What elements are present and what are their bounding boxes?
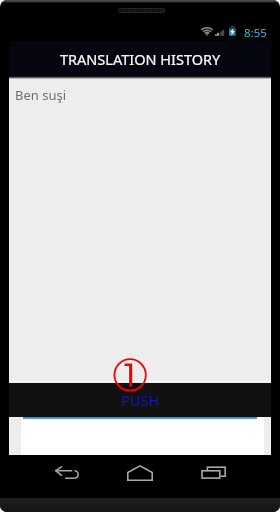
button[interactable]: PUSH: [9, 383, 271, 417]
staticText: TRANSLATION HISTORY: [60, 49, 221, 69]
button[interactable]: Home: [104, 455, 177, 498]
staticText: Ben suşi: [15, 86, 67, 104]
button[interactable]: Back: [30, 455, 104, 498]
staticText: 8:55: [244, 25, 267, 41]
button[interactable]: Ben suşi: [9, 79, 271, 111]
staticText: PUSH: [121, 390, 160, 410]
button[interactable]: Recent apps: [177, 455, 251, 498]
button[interactable]: [21, 417, 264, 455]
